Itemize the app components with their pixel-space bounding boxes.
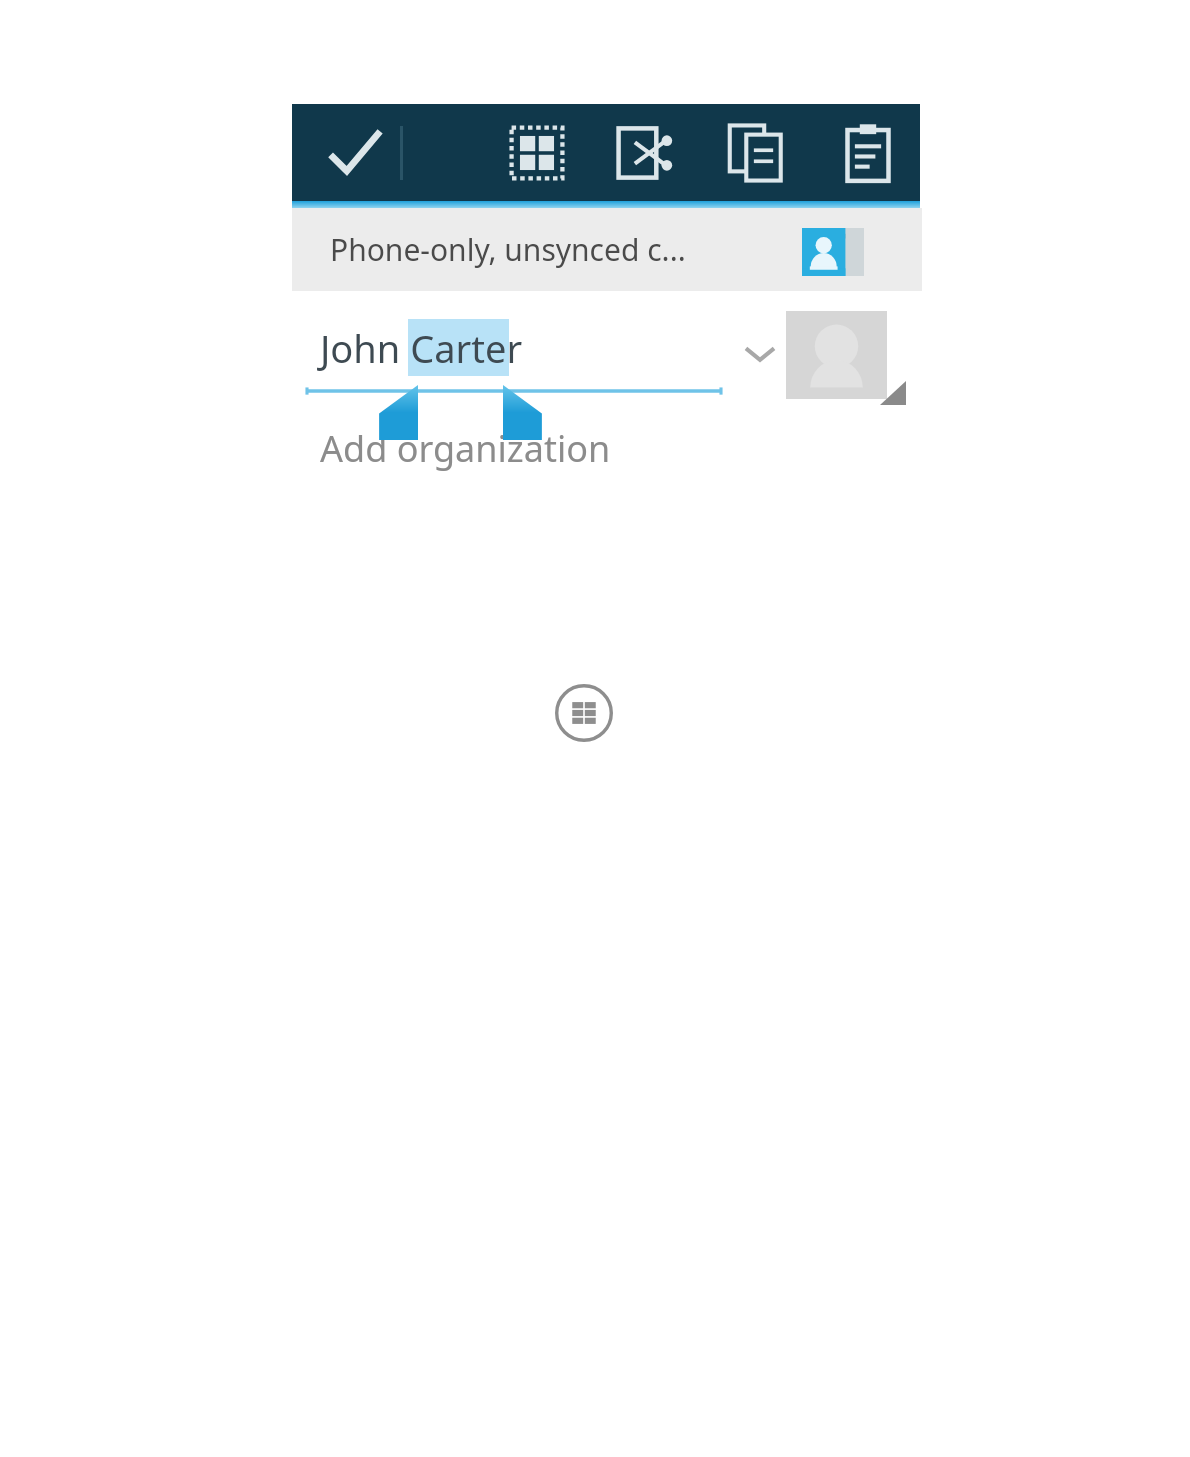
- staticText: Add organization: [320, 424, 611, 473]
- button[interactable]: Select all: [489, 112, 585, 194]
- button[interactable]: Paste: [820, 112, 916, 194]
- button[interactable]: Copy: [710, 112, 806, 194]
- staticText: John Carter: [320, 322, 523, 374]
- button[interactable]: Expand name fields: [733, 330, 787, 378]
- button[interactable]: John Carter: [320, 322, 523, 374]
- button[interactable]: Done: [306, 108, 402, 198]
- button[interactable]: Phone-only, unsynced c...: [292, 208, 922, 291]
- button[interactable]: Cut: [600, 112, 696, 194]
- staticText: Phone-only, unsynced c...: [330, 229, 686, 270]
- button[interactable]: Selection end: [503, 385, 557, 440]
- button[interactable]: Show keyboard: [553, 682, 615, 744]
- button[interactable]: Add organization: [320, 424, 611, 473]
- button[interactable]: Add photo: [786, 311, 887, 399]
- button[interactable]: Selection start: [364, 385, 418, 440]
